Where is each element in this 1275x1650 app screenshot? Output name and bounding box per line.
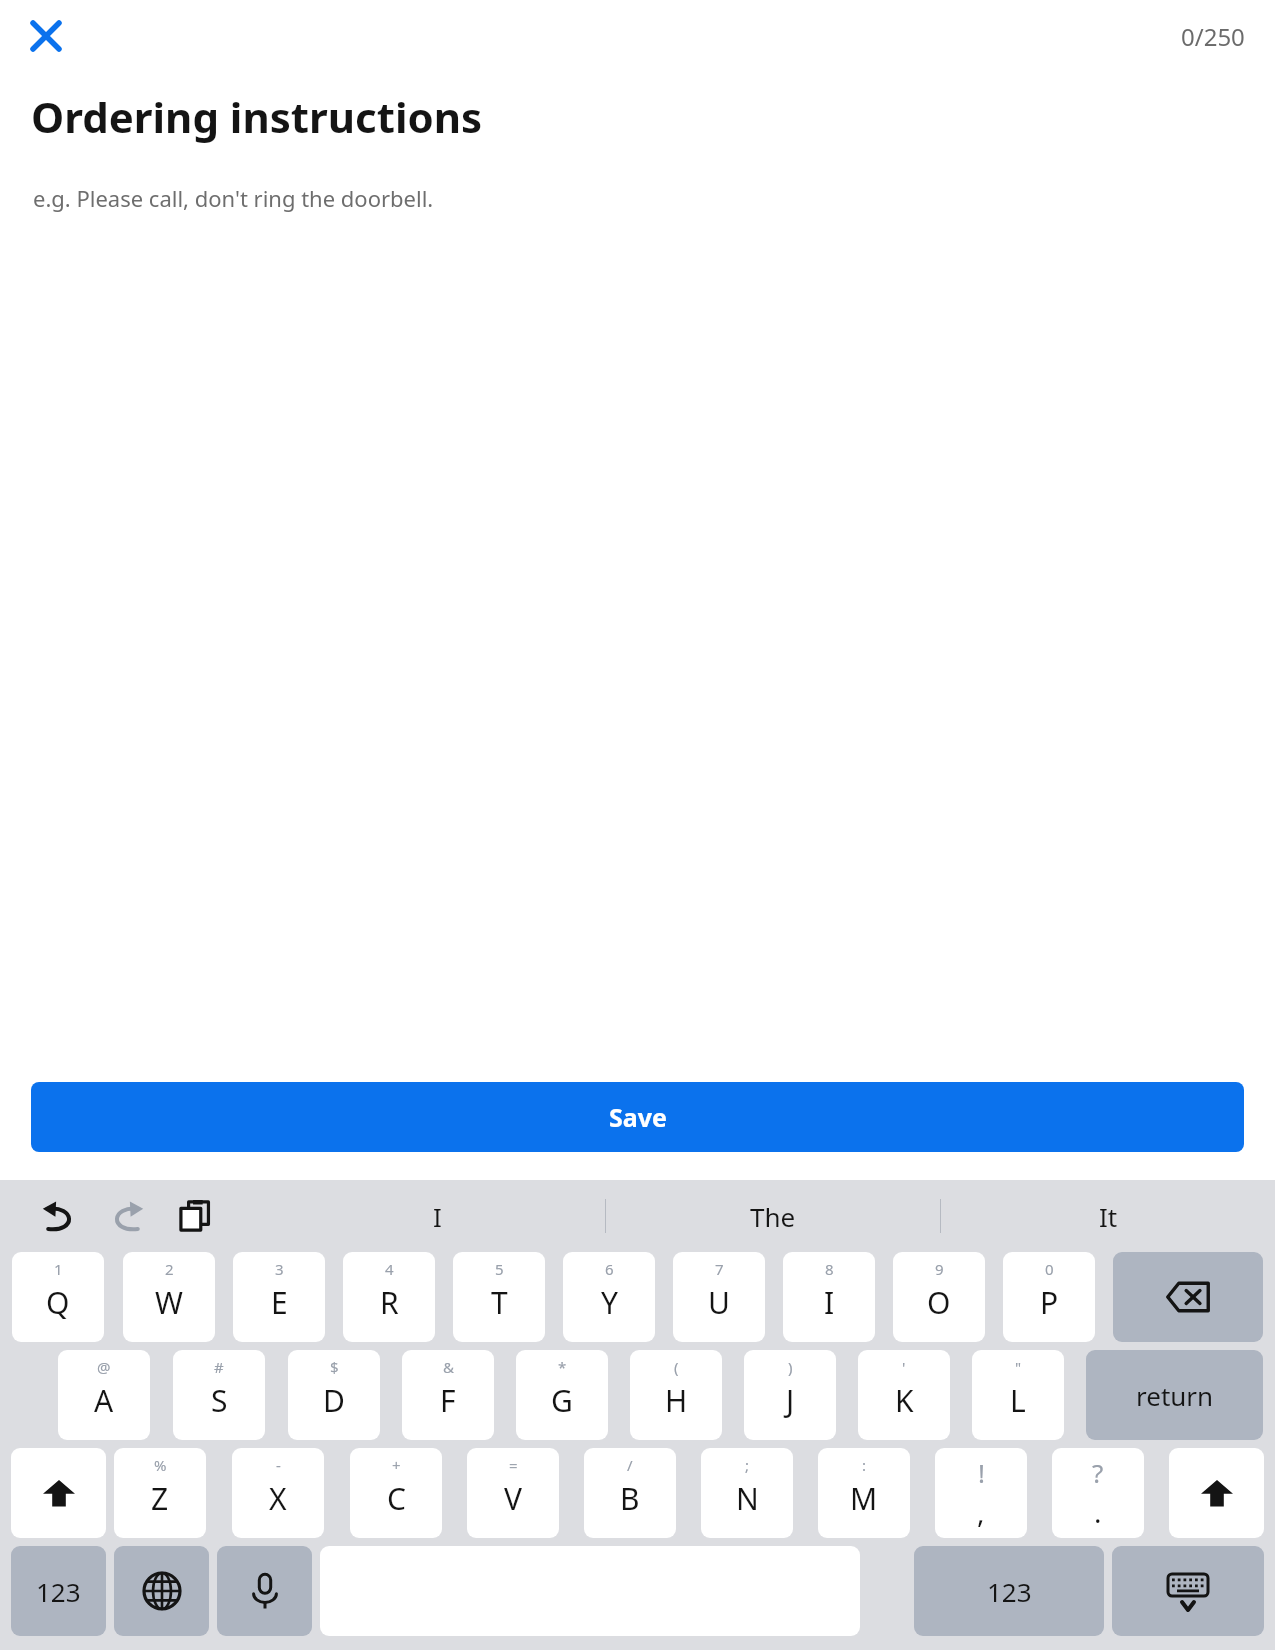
staticText: U xyxy=(708,1282,730,1323)
staticText: % xyxy=(154,1455,167,1475)
button[interactable]: 9 xyxy=(893,1252,985,1342)
staticText: & xyxy=(443,1357,454,1377)
button[interactable]: : xyxy=(818,1448,910,1538)
button[interactable]: 3 xyxy=(233,1252,325,1342)
staticText: C xyxy=(387,1478,406,1519)
staticText: J xyxy=(786,1380,795,1421)
button[interactable]: Redo xyxy=(98,1187,156,1245)
button[interactable]: & xyxy=(402,1350,494,1440)
button[interactable]: Undo xyxy=(30,1187,88,1245)
staticText: ; xyxy=(745,1455,750,1475)
button[interactable]: Hide keyboard xyxy=(1112,1546,1264,1636)
staticText: / xyxy=(627,1455,633,1475)
button[interactable]: It xyxy=(941,1180,1275,1252)
button[interactable]: 1 xyxy=(12,1252,104,1342)
staticText: : xyxy=(862,1455,867,1475)
staticText: L xyxy=(1010,1380,1026,1421)
button[interactable]: 8 xyxy=(783,1252,875,1342)
staticText: W xyxy=(155,1282,183,1323)
button[interactable]: 4 xyxy=(343,1252,435,1342)
staticText: + xyxy=(392,1455,401,1475)
button[interactable]: 0 xyxy=(1003,1252,1095,1342)
button[interactable]: / xyxy=(584,1448,676,1538)
staticText: 8 xyxy=(825,1259,834,1279)
button[interactable]: % xyxy=(114,1448,206,1538)
staticText: B xyxy=(620,1478,640,1519)
staticText: 1 xyxy=(54,1259,63,1279)
button[interactable]: $ xyxy=(288,1350,380,1440)
staticText: M xyxy=(850,1478,878,1519)
button[interactable]: Shift xyxy=(11,1448,106,1538)
staticText: X xyxy=(269,1478,287,1519)
staticText: 0 xyxy=(1045,1259,1054,1279)
button[interactable]: 123 xyxy=(914,1546,1104,1636)
staticText: A xyxy=(94,1380,114,1421)
staticText: R xyxy=(380,1282,399,1323)
staticText: E xyxy=(271,1282,288,1323)
button[interactable]: Backspace xyxy=(1113,1252,1263,1342)
staticText: - xyxy=(276,1455,281,1475)
button[interactable]: " xyxy=(972,1350,1064,1440)
staticText: # xyxy=(214,1357,224,1377)
button[interactable]: Clipboard xyxy=(166,1187,224,1245)
button[interactable]: Save xyxy=(31,1082,1244,1152)
button[interactable]: + xyxy=(350,1448,442,1538)
staticText: Q xyxy=(46,1282,70,1323)
staticText: P xyxy=(1040,1282,1059,1323)
staticText: Z xyxy=(151,1478,169,1519)
button[interactable]: ; xyxy=(701,1448,793,1538)
staticText: e.g. Please call, don't ring the doorbel… xyxy=(33,183,434,213)
button[interactable]: return xyxy=(1086,1350,1263,1440)
button[interactable]: 2 xyxy=(123,1252,215,1342)
staticText: 123 xyxy=(987,1574,1032,1609)
button[interactable]: Voice input xyxy=(217,1546,312,1636)
staticText: 7 xyxy=(715,1259,724,1279)
button[interactable]: 6 xyxy=(563,1252,655,1342)
staticText: ( xyxy=(674,1357,679,1377)
staticText: , xyxy=(977,1493,985,1531)
staticText: F xyxy=(440,1380,456,1421)
staticText: 6 xyxy=(605,1259,614,1279)
button[interactable]: 123 xyxy=(11,1546,106,1636)
staticText: It xyxy=(1099,1199,1118,1234)
button[interactable]: Change language xyxy=(114,1546,209,1636)
staticText: I xyxy=(433,1199,442,1234)
staticText: N xyxy=(736,1478,759,1519)
staticText: $ xyxy=(330,1357,339,1377)
staticText: 5 xyxy=(495,1259,504,1279)
staticText: @ xyxy=(97,1357,111,1377)
button[interactable]: I xyxy=(270,1180,605,1252)
button[interactable]: The xyxy=(606,1180,940,1252)
button[interactable]: ? xyxy=(1052,1448,1144,1538)
button[interactable]: = xyxy=(467,1448,559,1538)
button[interactable]: # xyxy=(173,1350,265,1440)
button[interactable]: Close xyxy=(18,8,74,64)
staticText: 3 xyxy=(275,1259,284,1279)
staticText: S xyxy=(211,1380,228,1421)
button[interactable]: ) xyxy=(744,1350,836,1440)
button[interactable]: Shift xyxy=(1169,1448,1264,1538)
staticText: ' xyxy=(902,1357,906,1377)
staticText: 2 xyxy=(165,1259,174,1279)
staticText: ? xyxy=(1092,1455,1104,1490)
button[interactable]: @ xyxy=(58,1350,150,1440)
staticText: 9 xyxy=(935,1259,944,1279)
button[interactable]: ! xyxy=(935,1448,1027,1538)
button[interactable]: * xyxy=(516,1350,608,1440)
staticText: 4 xyxy=(385,1259,394,1279)
staticText: = xyxy=(509,1455,518,1475)
staticText: I xyxy=(824,1282,835,1323)
staticText: D xyxy=(323,1380,345,1421)
staticText: The xyxy=(750,1199,796,1234)
button[interactable]: ' xyxy=(858,1350,950,1440)
staticText: ! xyxy=(978,1455,985,1490)
staticText: Ordering instructions xyxy=(31,88,483,145)
staticText: 123 xyxy=(36,1574,81,1609)
staticText: G xyxy=(551,1380,573,1421)
staticText: O xyxy=(927,1282,951,1323)
button[interactable]: 7 xyxy=(673,1252,765,1342)
button[interactable]: ( xyxy=(630,1350,722,1440)
button[interactable]: - xyxy=(232,1448,324,1538)
button[interactable]: 5 xyxy=(453,1252,545,1342)
